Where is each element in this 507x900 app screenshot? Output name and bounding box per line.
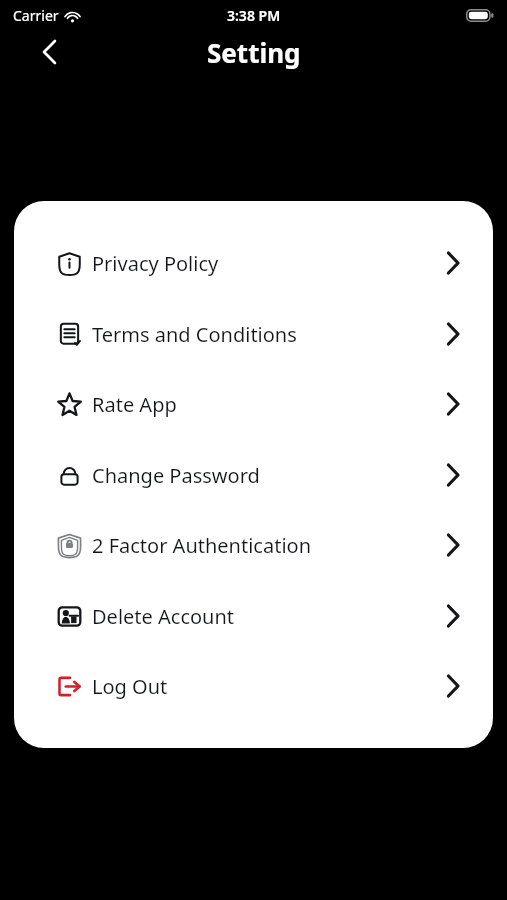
staticText: Delete Account [92,603,447,630]
button[interactable]: Log Out [14,662,493,710]
staticText: 3:38 PM [227,6,281,25]
button[interactable]: 2 Factor Authentication [14,521,493,569]
staticText: Terms and Conditions [92,321,447,348]
button[interactable]: Privacy Policy [14,239,493,287]
staticText: Rate App [92,391,447,418]
button[interactable]: Change Password [14,451,493,499]
button[interactable]: Rate App [14,380,493,428]
button[interactable]: Delete Account [14,592,493,640]
button[interactable]: Terms and Conditions [14,310,493,358]
staticText: 2 Factor Authentication [92,532,447,559]
staticText: Privacy Policy [92,250,447,277]
staticText: Carrier [13,6,59,25]
staticText: Setting [207,35,301,70]
staticText: Log Out [92,673,447,700]
button[interactable]: Back [30,33,68,71]
staticText: Change Password [92,462,447,489]
